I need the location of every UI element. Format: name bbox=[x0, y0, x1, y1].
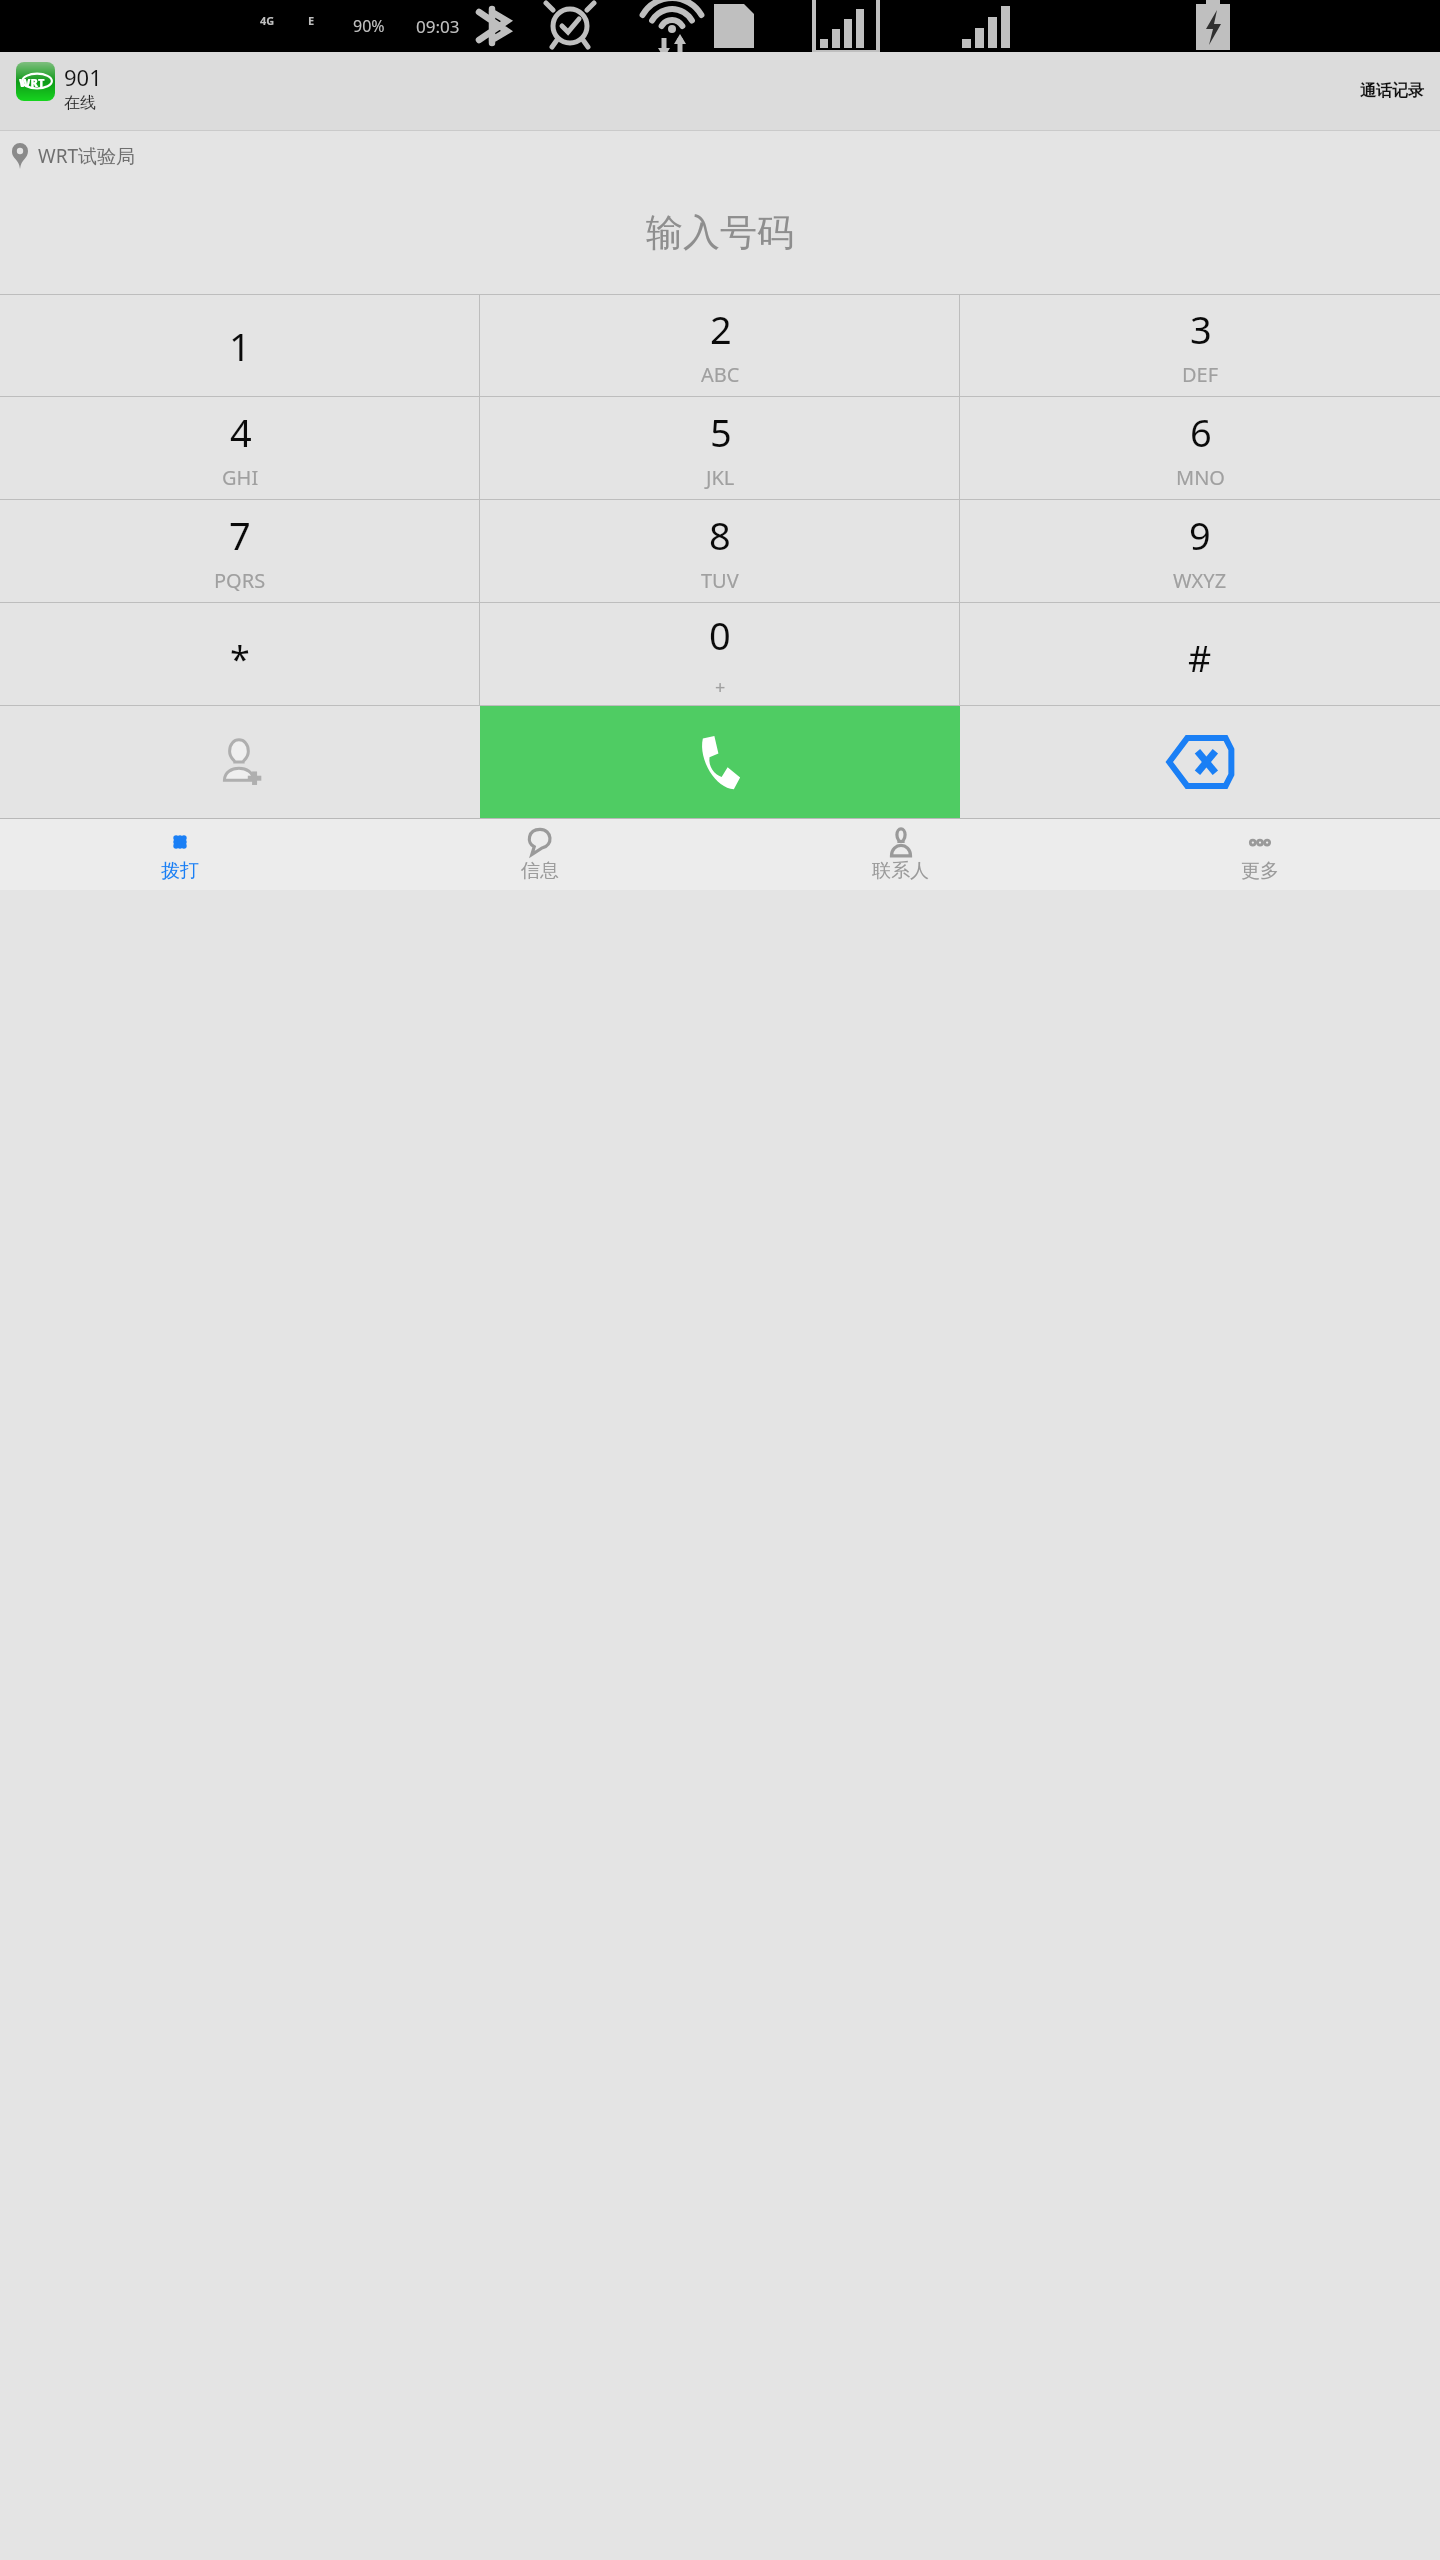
button[interactable]: 7 bbox=[0, 500, 480, 602]
button[interactable]: 5 bbox=[480, 397, 960, 499]
staticText: 联系人 bbox=[872, 859, 929, 883]
staticText: + bbox=[715, 675, 726, 700]
staticText: TUV bbox=[701, 567, 739, 594]
button[interactable]: * bbox=[0, 603, 480, 705]
staticText: 拨打 bbox=[161, 859, 199, 883]
button[interactable]: 9 bbox=[960, 500, 1440, 602]
button[interactable]: 通话记录 bbox=[1356, 73, 1428, 109]
staticText: WRT bbox=[19, 75, 45, 90]
staticText: 2 bbox=[710, 303, 732, 355]
staticText: WXYZ bbox=[1173, 567, 1227, 594]
button[interactable]: 1 bbox=[0, 295, 480, 396]
staticText: 5 bbox=[710, 406, 732, 458]
staticText: 6 bbox=[1190, 406, 1212, 458]
staticText: 90% bbox=[353, 15, 385, 37]
button[interactable]: Delete bbox=[960, 706, 1440, 818]
staticText: * bbox=[230, 634, 250, 683]
staticText: 4 bbox=[230, 406, 252, 458]
staticText: 输入号码 bbox=[646, 209, 794, 256]
staticText: 4G bbox=[260, 13, 275, 28]
button[interactable]: WRT试验局 bbox=[12, 143, 136, 169]
staticText: E bbox=[308, 13, 315, 28]
staticText: 09:03 bbox=[416, 15, 460, 38]
staticText: WRT试验局 bbox=[38, 143, 136, 169]
button[interactable]: 4 bbox=[0, 397, 480, 499]
staticText: 1 bbox=[229, 320, 251, 372]
button[interactable]: 拨打 bbox=[0, 819, 360, 890]
button[interactable]: 3 bbox=[960, 295, 1440, 396]
button[interactable]: 信息 bbox=[360, 819, 720, 890]
staticText: 901 bbox=[64, 62, 102, 92]
button[interactable]: # bbox=[960, 603, 1440, 705]
staticText: 9 bbox=[1189, 509, 1211, 561]
staticText: 通话记录 bbox=[1360, 81, 1424, 101]
button[interactable]: 2 bbox=[480, 295, 960, 396]
staticText: 信息 bbox=[521, 859, 559, 883]
button[interactable]: 0 bbox=[480, 603, 960, 705]
staticText: 7 bbox=[229, 509, 251, 561]
staticText: MNO bbox=[1176, 464, 1225, 491]
button[interactable]: Add contact bbox=[0, 706, 480, 818]
staticText: DEF bbox=[1182, 361, 1219, 388]
button[interactable]: App icon bbox=[16, 62, 55, 101]
staticText: ABC bbox=[701, 361, 740, 388]
button[interactable]: 联系人 bbox=[720, 819, 1080, 890]
button[interactable]: 6 bbox=[960, 397, 1440, 499]
button[interactable]: 8 bbox=[480, 500, 960, 602]
button[interactable]: Call bbox=[480, 706, 960, 818]
staticText: 3 bbox=[1190, 303, 1212, 355]
staticText: 0 bbox=[709, 609, 731, 661]
staticText: PQRS bbox=[214, 567, 266, 594]
staticText: 8 bbox=[709, 509, 731, 561]
staticText: JKL bbox=[706, 464, 735, 491]
staticText: GHI bbox=[222, 464, 259, 491]
button[interactable]: 更多 bbox=[1080, 819, 1440, 890]
staticText: # bbox=[1188, 634, 1212, 683]
staticText: 更多 bbox=[1241, 859, 1279, 883]
staticText: 在线 bbox=[64, 93, 96, 113]
